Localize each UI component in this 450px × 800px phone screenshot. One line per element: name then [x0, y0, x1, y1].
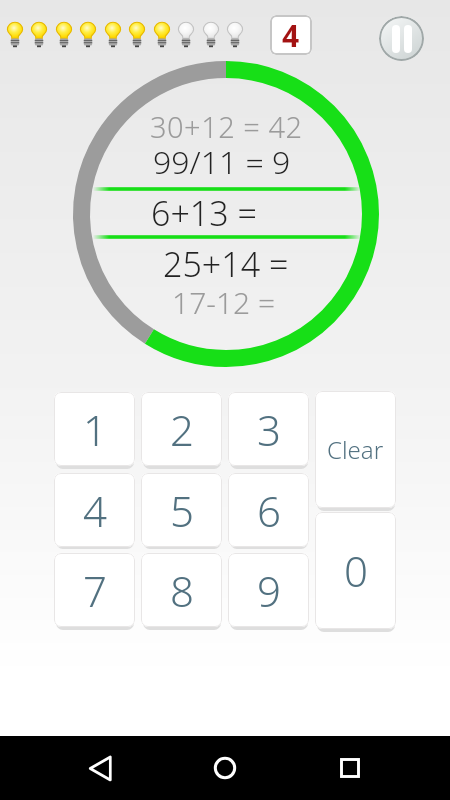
staticText: 0 [344, 542, 368, 599]
button[interactable]: 5 [141, 473, 222, 547]
button[interactable]: 6 [228, 473, 309, 547]
button[interactable]: 8 [141, 553, 222, 627]
staticText: 1 [83, 401, 107, 458]
staticText: 2 [170, 401, 194, 458]
button[interactable]: 1 [54, 392, 135, 466]
staticText: 5 [170, 482, 194, 539]
staticText: 25+14 = [163, 241, 289, 287]
button[interactable] [195, 738, 255, 798]
staticText: 99/11 = 9 [153, 140, 291, 184]
staticText: 30+12 = 42 [150, 107, 303, 146]
staticText: 4 [282, 15, 300, 55]
button[interactable]: Clear [315, 391, 396, 508]
button[interactable]: 9 [228, 553, 309, 627]
button[interactable] [379, 16, 424, 61]
button[interactable]: 4 [54, 473, 135, 547]
staticText: 6+13 = [151, 190, 257, 236]
button[interactable]: 3 [228, 392, 309, 466]
button[interactable]: 7 [54, 553, 135, 627]
staticText: 17-12 = [172, 282, 276, 323]
button[interactable] [320, 738, 380, 798]
staticText: Clear [327, 433, 384, 466]
staticText: 3 [257, 401, 281, 458]
staticText: 4 [83, 482, 107, 539]
button[interactable]: 2 [141, 392, 222, 466]
button[interactable]: 0 [315, 512, 396, 629]
staticText: 8 [170, 562, 194, 619]
staticText: 9 [257, 562, 281, 619]
staticText: 6 [257, 482, 281, 539]
staticText: 7 [83, 562, 107, 619]
button[interactable] [70, 738, 130, 798]
